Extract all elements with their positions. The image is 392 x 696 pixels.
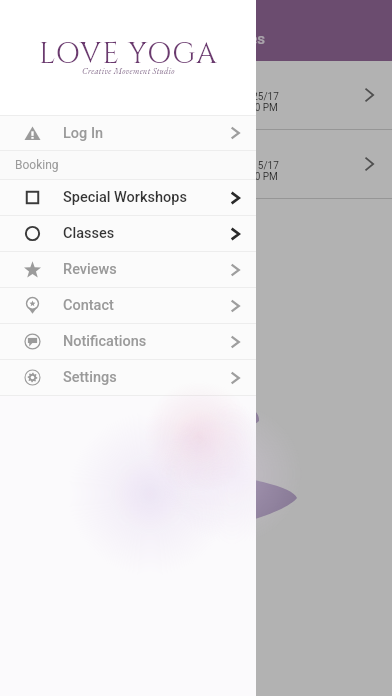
staticText: 6:00 PM [241,171,278,183]
button[interactable]: Contact [0,288,256,323]
staticText: Special Workshops [63,189,187,206]
staticText: 6:00 PM [241,102,278,114]
button[interactable]: Vinyasa Flow [0,61,392,129]
button[interactable]: Settings [0,360,256,395]
staticText: Booking [15,158,59,172]
staticText: Classes [63,225,115,242]
staticText: Log In [63,125,104,142]
staticText: Notifications [63,333,147,350]
staticText: Settings [63,369,117,386]
staticText: Thu 6/15/17 [223,160,279,172]
staticText: Classes [212,30,265,48]
button[interactable]: Classes [0,216,256,251]
staticText: LOVE YOGA [39,35,218,74]
staticText: Reviews [63,261,117,278]
button[interactable]: Log In [0,116,256,150]
staticText: Gentle Yoga [18,157,83,171]
button[interactable]: Gentle Yoga [0,130,392,198]
staticText: Thu 5/25/17 [223,91,279,103]
staticText: Contact [63,297,114,314]
staticText: Creative Movement Studio [82,65,175,76]
button[interactable]: Special Workshops [0,180,256,215]
button[interactable]: Notifications [0,324,256,359]
button[interactable]: Reviews [0,252,256,287]
